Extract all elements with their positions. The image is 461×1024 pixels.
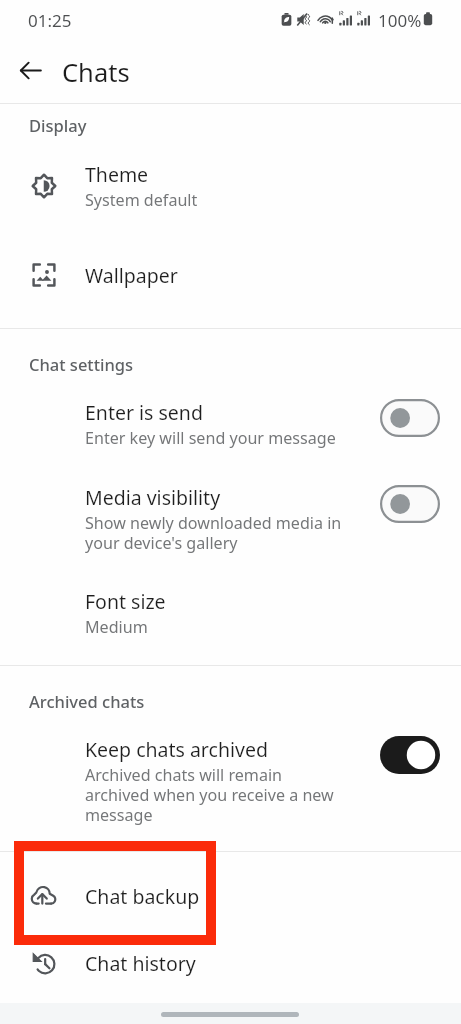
button[interactable]: Font size	[0, 575, 461, 651]
staticText: Chat backup	[85, 883, 200, 910]
button[interactable]: Enter is send	[0, 389, 461, 461]
staticText: System default	[85, 189, 198, 211]
staticText: Show newly downloaded media in your devi…	[85, 512, 342, 553]
staticText: Chats	[62, 55, 130, 90]
staticText: Keep chats archived	[85, 736, 268, 763]
staticText: Chat history	[85, 950, 196, 977]
button[interactable]: Keep chats archived	[0, 724, 461, 836]
staticText: Chat settings	[29, 353, 134, 375]
button[interactable]: Chat backup	[0, 869, 461, 923]
staticText: Archived chats	[29, 690, 145, 712]
staticText: Display	[29, 114, 87, 136]
button[interactable]: Theme	[0, 148, 461, 224]
staticText: Theme	[85, 161, 149, 188]
staticText: Media visibility	[85, 484, 221, 511]
staticText: Archived chats will remain archived when…	[85, 764, 334, 825]
staticText: Medium	[85, 616, 148, 638]
button[interactable]: Chat history	[0, 936, 461, 990]
staticText: Font size	[85, 588, 166, 615]
staticText: Wallpaper	[85, 262, 178, 289]
staticText: Enter key will send your message	[85, 427, 336, 449]
staticText: Enter is send	[85, 399, 203, 426]
staticText: 01:25	[28, 9, 72, 32]
button[interactable]: Wallpaper	[0, 248, 461, 302]
staticText: 100%	[378, 9, 422, 32]
button[interactable]: Back	[8, 48, 52, 92]
button[interactable]: Media visibility	[0, 474, 461, 566]
